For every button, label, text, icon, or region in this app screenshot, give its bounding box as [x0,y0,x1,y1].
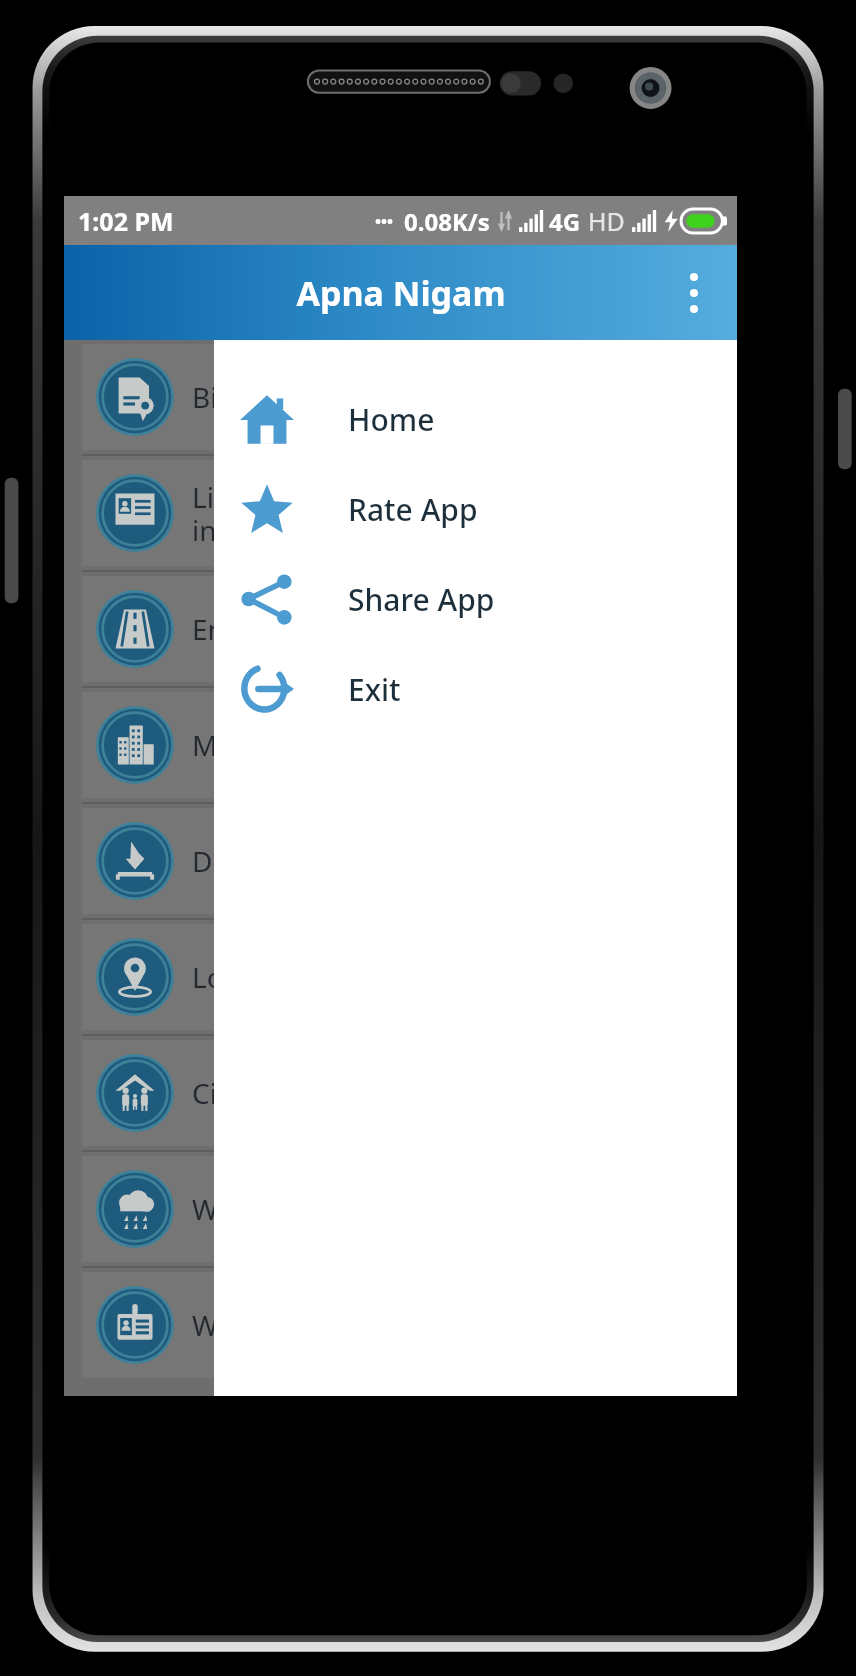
staticText: Location [192,958,305,996]
staticText: 0.08K/s [404,205,490,238]
button[interactable]: More options [663,262,725,324]
button[interactable]: Share App [214,554,737,644]
button[interactable]: My City [82,692,719,798]
button[interactable]: Home [214,374,737,464]
staticText: ••• [375,210,394,232]
button[interactable]: Who is Who [82,1272,719,1378]
button[interactable]: Weather [82,1156,719,1262]
staticText: Birth Certificate [192,378,398,416]
button[interactable]: Encroachment [82,576,719,682]
staticText: License information [192,478,349,549]
staticText: Citizen Services [192,1074,395,1112]
staticText: HD [588,204,625,238]
button[interactable]: Citizen Services [82,1040,719,1146]
staticText: Rate App [348,489,478,530]
button[interactable]: Location [82,924,719,1030]
staticText: My City [192,726,289,764]
staticText: Downloads [192,842,339,880]
button[interactable]: License information [82,460,719,566]
staticText: Who is Who [192,1306,348,1344]
button[interactable]: Downloads [82,808,719,914]
staticText: 1:02 PM [78,204,174,238]
button[interactable]: Birth Certificate [82,344,719,450]
button[interactable]: Rate App [214,464,737,554]
staticText: Encroachment [192,610,383,648]
staticText: Share App [348,579,495,620]
staticText: Weather [192,1190,304,1228]
staticText: Exit [348,669,401,710]
staticText: Apna Nigam [296,270,506,316]
button[interactable]: Exit [214,644,737,734]
staticText: Home [348,399,435,440]
staticText: 4G [549,205,581,238]
